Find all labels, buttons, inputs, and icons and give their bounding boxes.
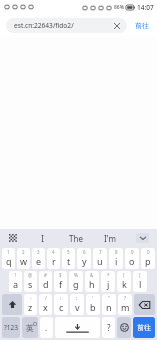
staticText: $	[59, 272, 62, 278]
staticText: 86%	[114, 4, 124, 11]
button[interactable]: "	[102, 294, 116, 315]
staticText: 6	[83, 249, 86, 255]
button[interactable]: (	[117, 271, 131, 292]
staticText: I'm	[104, 233, 116, 244]
staticText: e	[36, 255, 42, 267]
staticText: /	[45, 295, 47, 301]
staticText: ?123	[4, 323, 18, 332]
button[interactable]: *	[101, 271, 115, 292]
button[interactable]: I'm	[93, 229, 127, 247]
staticText: est.cn:22643/fido2/index_cn.html	[14, 21, 108, 30]
button[interactable]: @	[24, 271, 37, 292]
staticText: 9	[131, 249, 134, 255]
staticText: l	[139, 278, 142, 290]
staticText: *	[107, 272, 110, 278]
button[interactable]: 7	[93, 248, 107, 269]
button[interactable]: )	[133, 271, 147, 292]
button[interactable]: I	[26, 229, 59, 247]
staticText: 7	[99, 249, 102, 255]
button[interactable]: Shift	[2, 294, 22, 315]
staticText: r	[52, 255, 56, 267]
button[interactable]: 5	[62, 248, 75, 269]
staticText: 英	[26, 323, 34, 333]
staticText: g	[73, 278, 79, 290]
button[interactable]: &	[85, 271, 99, 292]
button[interactable]: $	[54, 271, 67, 292]
button[interactable]: :	[54, 294, 68, 315]
staticText: 前往	[135, 21, 149, 30]
staticText: 8	[115, 249, 118, 255]
staticText: 0	[147, 249, 150, 255]
staticText: u	[97, 255, 103, 267]
staticText: j	[107, 278, 110, 290]
button[interactable]: ?123	[2, 317, 20, 338]
button[interactable]: Space	[55, 317, 100, 338]
staticText: h	[89, 278, 95, 290]
button[interactable]: /	[39, 294, 52, 315]
staticText: b	[90, 301, 96, 313]
staticText: i	[115, 255, 118, 267]
staticText: 5	[67, 249, 70, 255]
button[interactable]: 8	[109, 248, 123, 269]
button[interactable]: ;	[70, 294, 84, 315]
button[interactable]: ?	[118, 294, 132, 315]
button[interactable]: 前往	[133, 18, 151, 33]
button[interactable]: #	[39, 271, 52, 292]
staticText: s	[28, 278, 33, 290]
staticText: )	[139, 272, 141, 278]
staticText: m	[121, 301, 130, 313]
button[interactable]: Keyboard menu	[0, 229, 26, 247]
staticText: &	[90, 272, 94, 278]
staticText: @	[28, 272, 33, 278]
button[interactable]: The	[59, 229, 93, 247]
button[interactable]: 4	[47, 248, 60, 269]
staticText: ?	[107, 322, 111, 333]
staticText: w	[20, 255, 28, 267]
staticText: y	[82, 255, 87, 267]
staticText: The	[69, 233, 83, 244]
button[interactable]: !	[9, 271, 22, 292]
staticText: t	[67, 255, 71, 267]
button[interactable]: -	[24, 294, 37, 315]
button[interactable]: 2	[17, 248, 30, 269]
button[interactable]: ?	[102, 317, 115, 338]
staticText: z	[28, 301, 33, 313]
button[interactable]: 3	[32, 248, 45, 269]
button[interactable]: .	[40, 317, 53, 338]
staticText: x	[43, 301, 48, 313]
staticText: %	[74, 272, 78, 278]
button[interactable]: 前往	[133, 317, 155, 338]
staticText: 3	[37, 249, 40, 255]
staticText: d	[43, 278, 49, 290]
button[interactable]: Emoji	[117, 317, 131, 338]
button[interactable]: '	[86, 294, 100, 315]
button[interactable]: 9	[125, 248, 139, 269]
button[interactable]: 6	[77, 248, 91, 269]
staticText: "	[108, 295, 110, 301]
staticText: k	[122, 278, 127, 290]
button[interactable]: 0	[141, 248, 155, 269]
staticText: o	[129, 255, 135, 267]
staticText: 14:07	[137, 3, 154, 12]
staticText: 2	[22, 249, 25, 255]
staticText: :	[60, 295, 62, 301]
staticText: v	[75, 301, 80, 313]
button[interactable]: %	[69, 271, 83, 292]
button[interactable]: Clear	[112, 21, 122, 31]
staticText: p	[145, 255, 151, 267]
button[interactable]: est.cn:22643/fido2/index_cn.html	[6, 18, 127, 33]
staticText: I	[41, 233, 44, 244]
button[interactable]: 1	[2, 248, 15, 269]
button[interactable]: Expand suggestions	[127, 229, 157, 247]
staticText: n	[106, 301, 112, 313]
staticText: .	[45, 322, 48, 333]
staticText: 前往	[137, 323, 151, 332]
staticText: c	[59, 301, 64, 313]
staticText: 1	[7, 249, 10, 255]
staticText: ;	[76, 295, 78, 301]
button[interactable]: Language	[22, 317, 38, 338]
staticText: #	[44, 272, 47, 278]
staticText: 4	[52, 249, 55, 255]
staticText: ?	[124, 295, 126, 301]
button[interactable]: Backspace	[134, 294, 155, 315]
